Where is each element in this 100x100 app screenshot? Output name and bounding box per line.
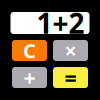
button[interactable]: + xyxy=(12,67,47,88)
staticText: × xyxy=(64,36,76,65)
staticText: 1+2 xyxy=(36,4,84,42)
button[interactable]: C xyxy=(12,40,47,61)
staticText: C xyxy=(23,37,36,64)
button[interactable]: × xyxy=(53,40,88,61)
staticText: + xyxy=(23,63,35,92)
button[interactable]: = xyxy=(53,67,88,88)
staticText: = xyxy=(64,63,76,92)
